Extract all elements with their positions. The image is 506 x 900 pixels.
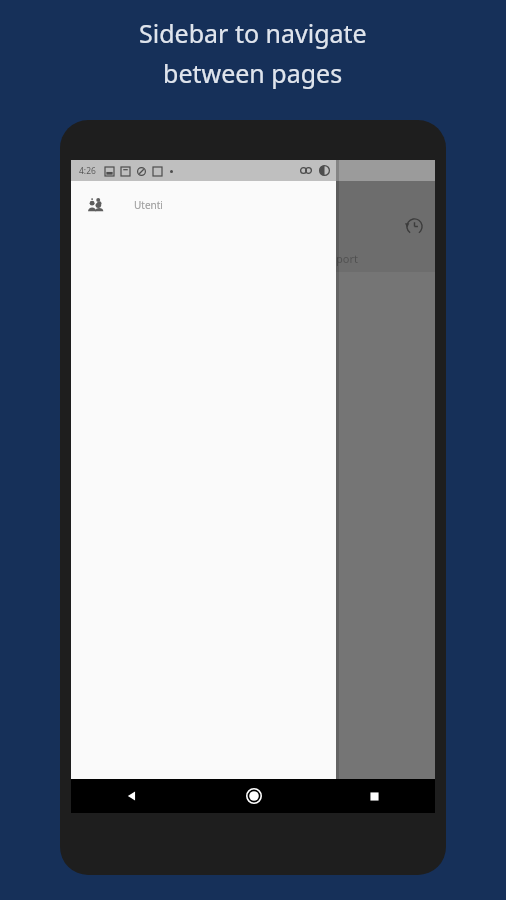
button[interactable]: Report xyxy=(323,251,358,266)
button[interactable]: Back xyxy=(71,779,193,813)
staticText: Report xyxy=(323,251,358,266)
staticText: 4:26 xyxy=(79,165,96,177)
staticText: Utenti xyxy=(134,198,163,212)
button[interactable]: Home xyxy=(193,779,314,813)
button[interactable]: History xyxy=(399,211,429,241)
staticText: between pages xyxy=(163,56,343,90)
button[interactable]: Utenti xyxy=(71,181,336,228)
button[interactable]: Recents xyxy=(314,779,435,813)
staticText: Sidebar to navigate xyxy=(139,16,367,50)
